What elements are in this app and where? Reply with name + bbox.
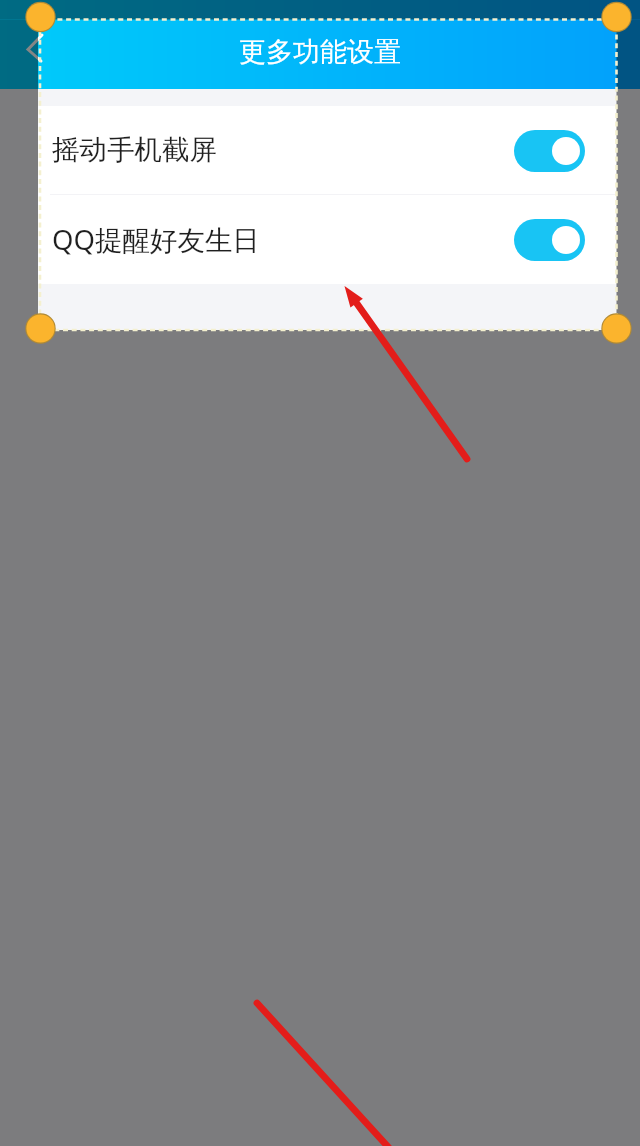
staticText: 摇动手机截屏	[52, 133, 217, 168]
button[interactable]: QQ提醒好友生日	[38, 195, 617, 284]
button[interactable]: Toggle	[514, 130, 585, 172]
button[interactable]: 摇动手机截屏	[38, 106, 617, 195]
staticText: QQ提醒好友生日	[52, 221, 260, 259]
button[interactable]: Toggle	[514, 219, 585, 261]
staticText: 更多功能设置	[239, 35, 401, 69]
button[interactable]: Back	[12, 22, 60, 74]
